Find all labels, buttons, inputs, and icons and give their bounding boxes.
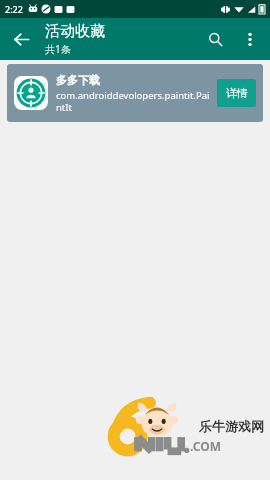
staticText: 乐牛游戏网 xyxy=(199,418,264,434)
staticText: .COM xyxy=(190,438,222,454)
staticText: 多多下载 xyxy=(56,73,100,87)
button[interactable]: Back xyxy=(0,18,42,60)
staticText: com.androiddevolopers.paintit.PaintIt xyxy=(56,89,211,113)
button[interactable]: 详情 xyxy=(217,79,256,107)
staticText: 详情 xyxy=(226,86,248,100)
button[interactable]: Search xyxy=(196,20,234,58)
staticText: 活动收藏 xyxy=(45,22,105,41)
staticText: 共1条 xyxy=(45,42,71,56)
button[interactable]: More options xyxy=(234,23,266,55)
button[interactable]: 多多下载 xyxy=(7,64,263,122)
staticText: 2:22 xyxy=(5,3,23,15)
